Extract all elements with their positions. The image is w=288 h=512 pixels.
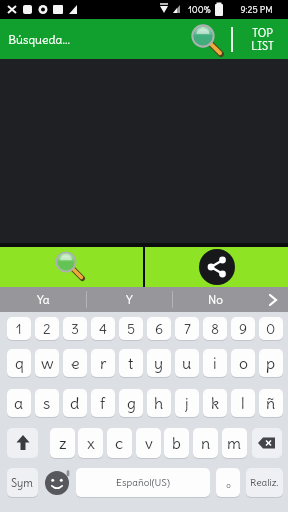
staticText: f bbox=[100, 393, 106, 413]
button[interactable]: v bbox=[136, 428, 161, 458]
staticText: Ya bbox=[37, 292, 50, 307]
button[interactable]: 4 bbox=[91, 317, 115, 340]
staticText: d bbox=[70, 393, 80, 413]
button[interactable]: b bbox=[164, 428, 189, 458]
button[interactable] bbox=[216, 468, 240, 497]
staticText: m bbox=[227, 433, 242, 453]
staticText: 6 bbox=[155, 320, 164, 338]
staticText: c bbox=[115, 433, 124, 453]
staticText: 4 bbox=[99, 320, 108, 338]
button[interactable]: a bbox=[7, 389, 31, 417]
button[interactable]: s bbox=[35, 389, 59, 417]
staticText: p bbox=[266, 353, 276, 373]
staticText: r bbox=[100, 353, 107, 373]
button[interactable]: q bbox=[7, 349, 31, 377]
staticText: z bbox=[59, 433, 67, 453]
button[interactable] bbox=[44, 468, 71, 497]
button[interactable]: h bbox=[147, 389, 171, 417]
staticText: k bbox=[211, 393, 220, 413]
staticText: y bbox=[154, 353, 164, 373]
staticText: 8 bbox=[211, 320, 220, 338]
button[interactable] bbox=[184, 21, 224, 57]
staticText: u bbox=[182, 353, 192, 373]
button[interactable]: e bbox=[63, 349, 87, 377]
button[interactable]: i bbox=[203, 349, 227, 377]
button[interactable]: r bbox=[91, 349, 115, 377]
button[interactable] bbox=[76, 468, 210, 497]
staticText: s bbox=[43, 393, 51, 413]
staticText: Sym bbox=[11, 476, 34, 490]
button[interactable]: y bbox=[147, 349, 171, 377]
staticText: 7 bbox=[184, 320, 191, 338]
staticText: l bbox=[241, 393, 245, 413]
staticText: 9:25 PM bbox=[240, 4, 273, 15]
button[interactable]: x bbox=[78, 428, 103, 458]
staticText: 2 bbox=[43, 320, 51, 338]
staticText: 5 bbox=[127, 320, 136, 338]
staticText: n bbox=[201, 433, 211, 453]
staticText: Español(US) bbox=[116, 476, 170, 489]
button[interactable]: g bbox=[119, 389, 143, 417]
staticText: a bbox=[14, 393, 24, 413]
button[interactable]: Realiz. bbox=[246, 468, 283, 497]
button[interactable]: Ya bbox=[0, 287, 86, 312]
staticText: o bbox=[239, 353, 248, 373]
staticText: t bbox=[128, 353, 134, 373]
staticText: e bbox=[71, 353, 80, 373]
button[interactable]: p bbox=[259, 349, 283, 377]
button[interactable]: j bbox=[175, 389, 199, 417]
staticText: Realiz. bbox=[250, 476, 279, 489]
staticText: TOP LIST bbox=[251, 26, 274, 53]
button[interactable]: d bbox=[63, 389, 87, 417]
staticText: g bbox=[127, 393, 136, 413]
button[interactable]: l bbox=[231, 389, 255, 417]
staticText: b bbox=[172, 433, 181, 453]
button[interactable] bbox=[7, 428, 38, 458]
button[interactable]: 5 bbox=[119, 317, 143, 340]
button[interactable]: o bbox=[231, 349, 255, 377]
staticText: j bbox=[185, 393, 189, 413]
button[interactable] bbox=[252, 428, 282, 458]
staticText: x bbox=[87, 433, 95, 453]
button[interactable]: w bbox=[35, 349, 59, 377]
button[interactable]: t bbox=[119, 349, 143, 377]
button[interactable]: 6 bbox=[147, 317, 171, 340]
button[interactable]: Sym bbox=[7, 468, 38, 497]
button[interactable]: 2 bbox=[35, 317, 59, 340]
staticText: h bbox=[154, 393, 164, 413]
staticText: q bbox=[15, 353, 24, 373]
staticText: 3 bbox=[71, 320, 79, 338]
button[interactable]: 1 bbox=[7, 317, 31, 340]
button[interactable]: 8 bbox=[203, 317, 227, 340]
staticText: 9 bbox=[239, 320, 248, 338]
button[interactable]: ñ bbox=[259, 389, 283, 417]
staticText: 100% bbox=[188, 4, 211, 15]
button[interactable]: n bbox=[193, 428, 218, 458]
button[interactable]: 0 bbox=[259, 317, 283, 340]
staticText: Y bbox=[126, 292, 133, 307]
staticText: 1 bbox=[16, 320, 22, 338]
staticText: v bbox=[145, 433, 153, 453]
button[interactable] bbox=[0, 247, 143, 287]
staticText: o bbox=[226, 480, 231, 490]
button[interactable]: Y bbox=[87, 287, 172, 312]
button[interactable]: TOP LIST bbox=[236, 19, 288, 59]
staticText: Búsqueda... bbox=[8, 32, 70, 47]
button[interactable]: z bbox=[50, 428, 75, 458]
button[interactable]: No bbox=[173, 287, 258, 312]
button[interactable]: f bbox=[91, 389, 115, 417]
button[interactable] bbox=[145, 247, 288, 287]
staticText: ñ bbox=[266, 393, 276, 413]
button[interactable]: 9 bbox=[231, 317, 255, 340]
button[interactable]: 7 bbox=[175, 317, 199, 340]
staticText: i bbox=[213, 353, 217, 373]
button[interactable]: u bbox=[175, 349, 199, 377]
button[interactable]: k bbox=[203, 389, 227, 417]
staticText: No bbox=[208, 292, 223, 307]
staticText: 0 bbox=[266, 320, 276, 338]
button[interactable]: m bbox=[222, 428, 247, 458]
button[interactable] bbox=[258, 287, 288, 312]
button[interactable]: 3 bbox=[63, 317, 87, 340]
staticText: w bbox=[41, 353, 54, 373]
button[interactable]: c bbox=[107, 428, 132, 458]
